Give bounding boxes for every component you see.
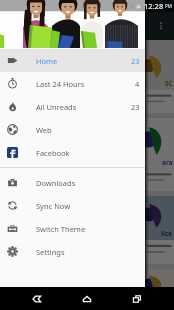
button[interactable]: ara: [0, 118, 174, 191]
staticText: Facebook: [36, 148, 70, 158]
button[interactable]: All Unreads: [0, 95, 145, 118]
staticText: Sync Now: [36, 201, 71, 211]
button[interactable]: Recent apps: [124, 287, 150, 310]
staticText: Downloads: [36, 178, 76, 188]
staticText: SC: [165, 79, 173, 88]
staticText: lice: [161, 229, 173, 238]
button[interactable]: Web: [0, 118, 145, 141]
button[interactable]: Sync Now: [0, 194, 145, 217]
staticText: All Unreads: [36, 102, 77, 112]
button[interactable]: F: [0, 269, 174, 305]
button[interactable]: SC: [0, 48, 174, 113]
staticText: 4: [135, 79, 140, 89]
button[interactable]: Home: [74, 287, 100, 310]
staticText: Switch Theme: [36, 224, 86, 234]
staticText: 23: [131, 56, 140, 66]
staticText: Settings: [36, 247, 65, 257]
button[interactable]: Home: [0, 49, 145, 72]
button[interactable]: Last 24 Hours: [0, 72, 145, 95]
button[interactable]: Settings: [0, 240, 145, 263]
staticText: Web: [36, 125, 52, 135]
staticText: 23: [131, 102, 140, 112]
staticText: Last 24 Hours: [36, 79, 85, 89]
button[interactable]: Switch Theme: [0, 217, 145, 240]
staticText: Home: [36, 56, 58, 66]
button[interactable]: More options: [154, 19, 168, 33]
button[interactable]: Downloads: [0, 171, 145, 194]
button[interactable]: lice: [0, 196, 174, 264]
staticText: ara: [162, 158, 173, 167]
staticText: PM: [165, 3, 172, 9]
button[interactable]: Back: [24, 287, 50, 310]
button[interactable]: Facebook: [0, 141, 145, 164]
staticText: 12:28: [144, 1, 164, 11]
